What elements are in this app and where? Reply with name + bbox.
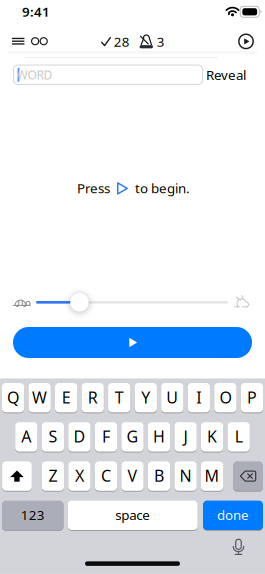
button[interactable]: Z bbox=[42, 461, 64, 491]
button[interactable]: X bbox=[68, 461, 91, 491]
button[interactable]: Delete bbox=[233, 461, 263, 491]
staticText: done bbox=[217, 506, 249, 524]
staticText: L bbox=[235, 426, 243, 447]
staticText: 123 bbox=[21, 506, 45, 524]
staticText: Q bbox=[7, 387, 19, 408]
staticText: to begin. bbox=[135, 179, 190, 197]
button[interactable]: U bbox=[161, 382, 183, 413]
staticText: J bbox=[184, 426, 188, 447]
staticText: 28 bbox=[114, 33, 130, 50]
button[interactable]: A bbox=[15, 422, 37, 452]
staticText: V bbox=[127, 465, 137, 486]
staticText: S bbox=[48, 426, 57, 447]
staticText: R bbox=[88, 387, 98, 408]
staticText: D bbox=[73, 426, 85, 447]
staticText: X bbox=[75, 465, 84, 486]
button[interactable]: F bbox=[95, 422, 117, 452]
staticText: I bbox=[196, 387, 201, 408]
staticText: Y bbox=[141, 387, 150, 408]
staticText: 9:41 bbox=[22, 3, 50, 20]
staticText: K bbox=[207, 426, 217, 447]
staticText: Z bbox=[48, 465, 57, 486]
staticText: W bbox=[32, 387, 47, 408]
staticText: H bbox=[153, 426, 165, 447]
button[interactable]: G bbox=[121, 422, 144, 452]
button[interactable]: Play bbox=[13, 327, 252, 358]
staticText: 3 bbox=[157, 33, 165, 50]
button[interactable]: E bbox=[55, 382, 77, 413]
button[interactable]: M bbox=[201, 461, 223, 491]
staticText: T bbox=[115, 387, 124, 408]
button[interactable]: S bbox=[42, 422, 64, 452]
button[interactable]: Menu bbox=[8, 34, 28, 49]
staticText: Press bbox=[77, 179, 110, 197]
button[interactable]: done bbox=[203, 500, 263, 530]
staticText: P bbox=[247, 387, 257, 408]
button[interactable]: Shift bbox=[2, 461, 32, 491]
button[interactable]: B bbox=[148, 461, 170, 491]
button[interactable]: K bbox=[201, 422, 223, 452]
staticText: F bbox=[102, 426, 110, 447]
staticText: C bbox=[101, 465, 111, 486]
button[interactable]: T bbox=[108, 382, 130, 413]
button[interactable]: D bbox=[68, 422, 91, 452]
button[interactable]: N bbox=[174, 461, 197, 491]
staticText: N bbox=[180, 465, 192, 486]
button[interactable]: C bbox=[95, 461, 117, 491]
staticText: G bbox=[126, 426, 138, 447]
staticText: Reveal bbox=[206, 66, 246, 84]
button[interactable]: L bbox=[227, 422, 250, 452]
button[interactable]: Play word bbox=[235, 30, 257, 52]
button[interactable]: Y bbox=[135, 382, 157, 413]
button[interactable]: R bbox=[81, 382, 104, 413]
staticText: O bbox=[219, 387, 231, 408]
button[interactable]: 123 bbox=[2, 500, 63, 530]
staticText: U bbox=[166, 387, 178, 408]
button[interactable]: Dictate bbox=[228, 536, 248, 558]
staticText: E bbox=[62, 387, 71, 408]
button[interactable]: J bbox=[174, 422, 197, 452]
staticText: space bbox=[115, 506, 150, 524]
button[interactable]: V bbox=[121, 461, 144, 491]
staticText: WORD bbox=[16, 67, 52, 83]
button[interactable]: H bbox=[148, 422, 170, 452]
button[interactable]: space bbox=[68, 500, 198, 530]
staticText: M bbox=[205, 465, 220, 486]
button[interactable]: I bbox=[188, 382, 210, 413]
button[interactable]: Reveal bbox=[202, 63, 250, 87]
button[interactable]: Review words bbox=[28, 34, 51, 49]
button[interactable]: W bbox=[28, 382, 51, 413]
button[interactable]: Q bbox=[2, 382, 24, 413]
button[interactable]: P bbox=[241, 382, 263, 413]
button[interactable]: O bbox=[214, 382, 236, 413]
staticText: A bbox=[21, 426, 31, 447]
staticText: B bbox=[154, 465, 164, 486]
